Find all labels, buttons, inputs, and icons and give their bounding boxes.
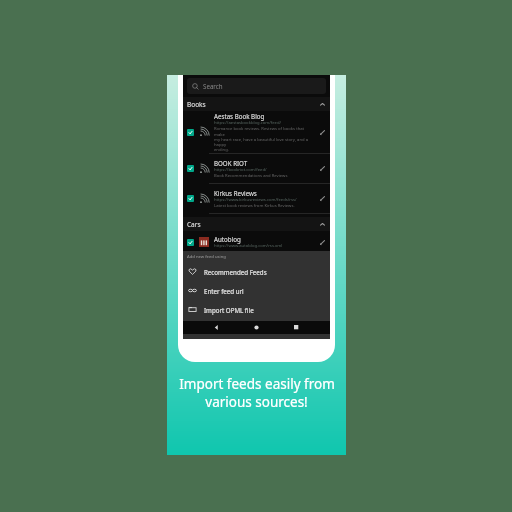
button[interactable]: Back (210, 321, 223, 334)
button[interactable]: Cars (183, 217, 330, 231)
staticText: https://www.autoblog.com/rss.xml (214, 243, 283, 249)
button[interactable]: Selected Aestas Book Blog (183, 111, 330, 153)
button[interactable]: Enter feed url (183, 281, 330, 300)
staticText: Romance book reviews. Reviews of books t… (214, 126, 314, 152)
staticText: Recommended Feeds (204, 268, 267, 276)
button[interactable]: Selected Aestas Book Blog (187, 129, 194, 136)
staticText: https://www.kirkusreviews.com/feeds/rss/ (214, 197, 297, 203)
button[interactable]: Recommended Feeds (183, 262, 330, 281)
button[interactable]: Selected Kirkus Reviews (183, 184, 330, 213)
button[interactable]: Edit BOOK RIOT (317, 163, 328, 174)
button[interactable]: Selected Kirkus Reviews (187, 195, 194, 202)
staticText: Enter feed url (204, 287, 244, 295)
button[interactable]: Selected BOOK RIOT (183, 154, 330, 183)
staticText: BOOK RIOT (214, 159, 248, 167)
button[interactable]: Edit Kirkus Reviews (317, 193, 328, 204)
staticText: various sources! (205, 393, 308, 411)
button[interactable]: Home (250, 321, 263, 334)
button[interactable]: Search (187, 78, 326, 94)
staticText: https://bookriot.com/feed/ (214, 167, 267, 173)
button[interactable]: Recents (290, 321, 303, 334)
button[interactable]: Books (183, 97, 330, 111)
button[interactable]: Edit Autoblog (317, 237, 328, 248)
staticText: Import feeds easily from (179, 375, 335, 393)
staticText: https://aestasbookblog.com/feed/ (214, 120, 282, 126)
staticText: Kirkus Reviews (214, 189, 257, 197)
button[interactable]: Selected Autoblog (183, 231, 330, 253)
button[interactable]: Selected Autoblog (187, 239, 194, 246)
staticText: Import OPML file (204, 306, 254, 314)
button[interactable]: Selected BOOK RIOT (187, 165, 194, 172)
staticText: Add new feed using (187, 254, 226, 260)
staticText: Aestas Book Blog (214, 112, 265, 120)
button[interactable]: Edit Aestas Book Blog (317, 127, 328, 138)
staticText: Search (203, 82, 223, 90)
staticText: Autoblog (214, 235, 241, 243)
staticText: Book Recommendations and Reviews (214, 173, 288, 179)
staticText: Cars (187, 220, 201, 229)
staticText: Latest book reviews from Kirkus Reviews. (214, 203, 295, 209)
staticText: Books (187, 100, 206, 109)
button[interactable]: Import OPML file (183, 300, 330, 319)
